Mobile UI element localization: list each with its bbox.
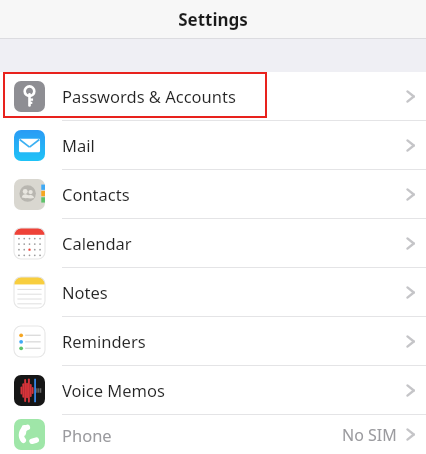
button[interactable]: Calendar <box>0 219 426 267</box>
staticText: Contacts <box>62 183 130 205</box>
staticText: Passwords & Accounts <box>62 85 236 107</box>
button[interactable]: Passwords & Accounts <box>0 72 426 120</box>
staticText: Voice Memos <box>62 379 165 401</box>
staticText: Reminders <box>62 330 146 352</box>
button[interactable]: Notes <box>0 268 426 316</box>
staticText: Mail <box>62 134 95 156</box>
staticText: No SIM <box>342 424 397 446</box>
button[interactable]: Mail <box>0 121 426 169</box>
button[interactable]: Voice Memos <box>0 366 426 414</box>
staticText: Phone <box>62 424 112 446</box>
staticText: Calendar <box>62 232 132 254</box>
staticText: Settings <box>178 8 248 31</box>
button[interactable]: Contacts <box>0 170 426 218</box>
button[interactable]: Reminders <box>0 317 426 365</box>
staticText: Notes <box>62 281 108 303</box>
button[interactable]: Phone <box>0 415 426 454</box>
